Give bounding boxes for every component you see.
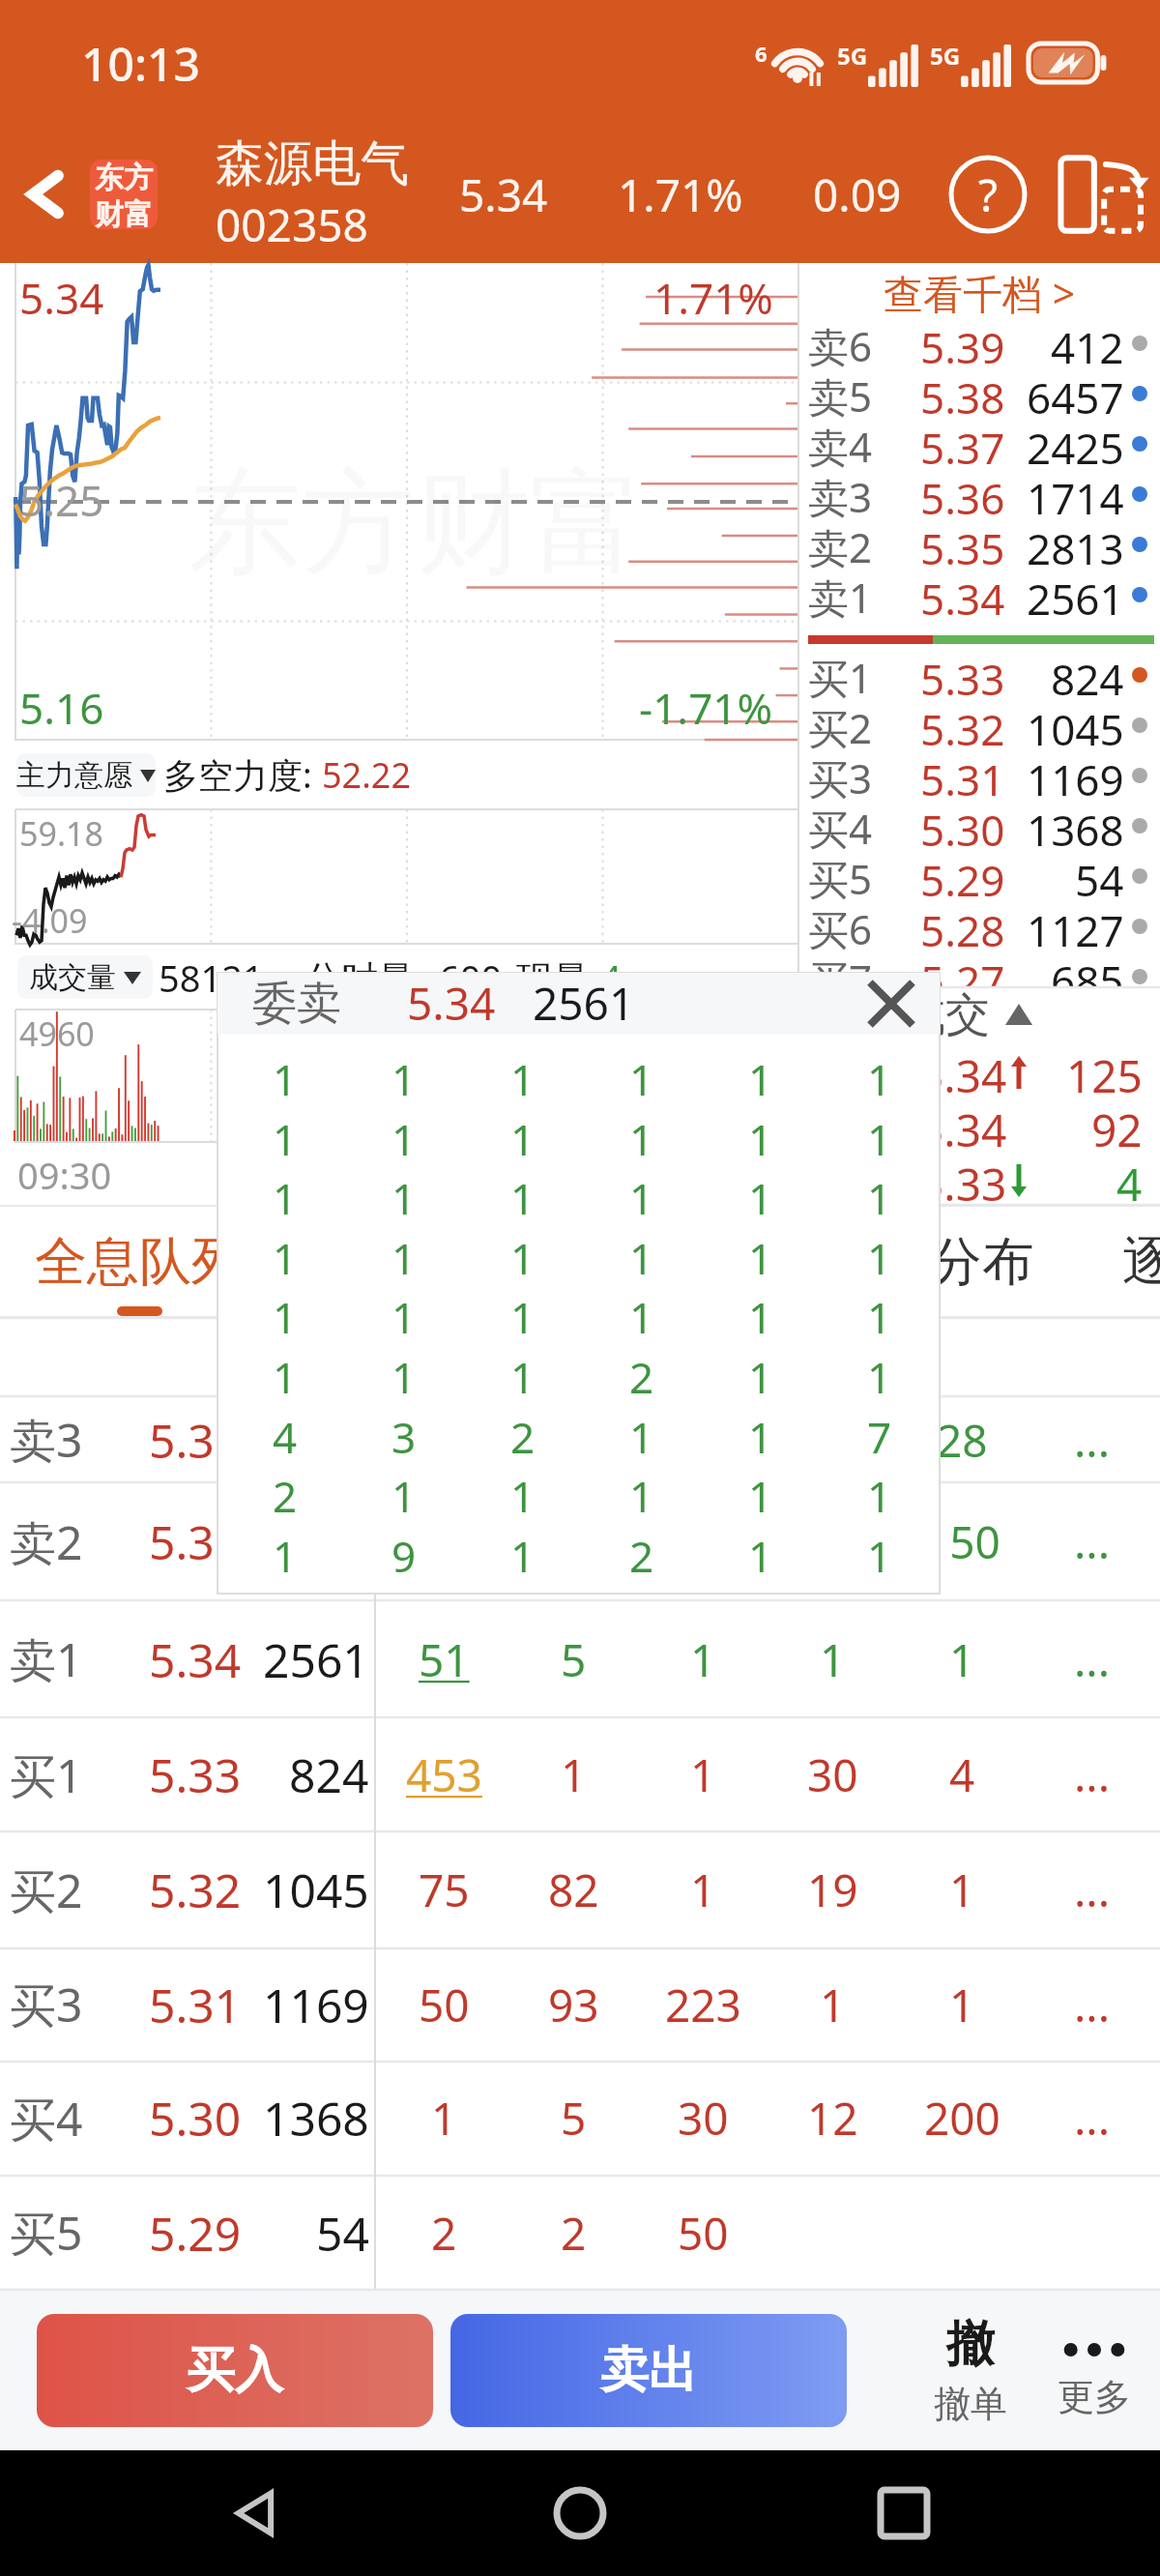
button[interactable]: Home xyxy=(512,2450,648,2576)
button[interactable]: 卖3 xyxy=(0,1397,1160,1482)
staticText: 1127 xyxy=(1027,901,1124,951)
staticText: 撤单 xyxy=(934,2381,1007,2427)
staticText: 09:30 xyxy=(17,1150,112,1200)
button[interactable]: 买4 xyxy=(0,2062,1160,2175)
button[interactable]: 卖1 xyxy=(0,1601,1160,1717)
button[interactable]: Help xyxy=(930,126,1046,263)
button[interactable]: 成交明细 xyxy=(560,1206,841,1318)
staticText: 1 xyxy=(510,1467,536,1525)
button[interactable]: 卖5 xyxy=(798,368,1160,419)
staticText: 30 xyxy=(678,2088,729,2149)
staticText: 现量: xyxy=(516,952,600,1003)
staticText: 1 xyxy=(510,1050,536,1108)
staticText: 4960 xyxy=(19,1011,95,1056)
staticText: 更多 xyxy=(1058,2374,1131,2420)
button[interactable]: 买1 xyxy=(798,650,1160,700)
staticText: 2561 xyxy=(533,973,635,1034)
staticText: 1 xyxy=(273,1288,298,1346)
staticText: 2561 xyxy=(263,1628,369,1691)
staticText: 2 xyxy=(629,1348,654,1406)
button[interactable]: 撤 xyxy=(909,2290,1032,2450)
staticText: 1 xyxy=(391,1050,417,1108)
button[interactable]: 买6 xyxy=(798,901,1160,951)
button[interactable]: 查看千档 > xyxy=(798,263,1160,323)
button[interactable]: Back xyxy=(0,126,90,263)
staticText: 东方财富 xyxy=(188,452,644,596)
staticText: 685 xyxy=(1051,951,1124,1002)
staticText: 9 xyxy=(391,1527,417,1585)
button[interactable]: 买4 xyxy=(798,801,1160,851)
staticText: 1 xyxy=(867,1169,892,1227)
staticText: 1 xyxy=(949,1629,975,1690)
button[interactable]: 卖6 xyxy=(798,318,1160,368)
button[interactable]: 买2 xyxy=(0,1832,1160,1947)
button[interactable]: Close xyxy=(843,973,940,1034)
staticText: 1 xyxy=(748,1408,773,1466)
staticText: 1 xyxy=(391,1110,417,1168)
button[interactable]: 卖3 xyxy=(798,469,1160,519)
button[interactable]: 卖2 xyxy=(798,519,1160,570)
staticText: 卖2 xyxy=(10,1510,83,1574)
button[interactable]: 逐笔 xyxy=(1122,1206,1160,1318)
staticText: 10:13 xyxy=(81,32,200,95)
staticText: 1714 xyxy=(263,1409,369,1472)
staticText: 1 xyxy=(273,1527,298,1585)
button[interactable]: 全息队列 xyxy=(0,1206,278,1318)
staticText: 1 xyxy=(510,1288,536,1346)
button[interactable]: 成交量 xyxy=(17,955,153,999)
staticText: 1368 xyxy=(263,2087,369,2150)
button[interactable]: 买5 xyxy=(0,2176,1160,2290)
staticText: 买1 xyxy=(808,650,873,700)
staticText: 2 xyxy=(629,1527,654,1585)
staticText: 5.36 xyxy=(920,469,1005,519)
staticText: 财富 xyxy=(95,196,153,229)
staticText: 买7 xyxy=(808,951,873,1002)
staticText: 5.28 xyxy=(920,901,1005,951)
button[interactable]: 买入 xyxy=(37,2314,433,2427)
staticText: 412 xyxy=(1051,318,1124,368)
staticText: 75 xyxy=(419,1859,470,1920)
button[interactable]: 买1 xyxy=(0,1718,1160,1831)
staticText: 30 xyxy=(807,1744,858,1805)
button[interactable]: 买2 xyxy=(798,700,1160,750)
staticText: 1 xyxy=(510,1110,536,1168)
button[interactable]: 更多 xyxy=(1032,2290,1156,2450)
button[interactable]: 卖1 xyxy=(798,570,1160,620)
button[interactable]: 买5 xyxy=(798,851,1160,901)
staticText: 50 xyxy=(678,2203,729,2264)
button[interactable]: Back xyxy=(188,2450,324,2576)
staticText: 1 xyxy=(867,1229,892,1287)
button[interactable]: 买3 xyxy=(0,1948,1160,2061)
staticText: 成交明细 xyxy=(596,1229,805,1295)
button[interactable]: 分布 xyxy=(841,1206,1122,1318)
staticText: 5.32 xyxy=(920,700,1005,750)
staticText: 买入 xyxy=(187,2340,283,2401)
button[interactable]: 实时成交 xyxy=(798,987,1160,1041)
button[interactable]: 委托队列 xyxy=(278,1206,560,1318)
staticText: 1 xyxy=(748,1467,773,1525)
staticText: 5.39 xyxy=(920,318,1005,368)
button[interactable]: Multi window xyxy=(1046,126,1152,263)
staticText: 2 xyxy=(561,2203,587,2264)
button[interactable]: 卖4 xyxy=(798,419,1160,469)
button[interactable]: 买7 xyxy=(798,951,1160,1002)
staticText: 4 xyxy=(949,1744,975,1805)
button[interactable]: 买3 xyxy=(798,750,1160,801)
staticText: 54 xyxy=(1075,851,1124,901)
button[interactable]: 主力意愿 xyxy=(16,753,156,797)
staticText: 5.37 xyxy=(920,419,1005,469)
staticText: ... xyxy=(1074,1744,1110,1805)
staticText: 51 xyxy=(419,1629,470,1690)
staticText: 1714 xyxy=(1027,469,1124,519)
staticText: 多空力度: xyxy=(163,751,322,799)
staticText: 卖1 xyxy=(10,1627,83,1691)
staticText: 5 xyxy=(561,1629,587,1690)
staticText: 1 xyxy=(273,1050,298,1108)
staticText: 125 xyxy=(1066,1045,1143,1099)
button[interactable]: 卖2 xyxy=(0,1483,1160,1600)
button[interactable]: Recents xyxy=(836,2450,971,2576)
staticText: ... xyxy=(1074,1629,1110,1690)
button[interactable]: 卖出 xyxy=(450,2314,847,2427)
staticText: 5.34 xyxy=(918,1045,1007,1099)
staticText: 1 xyxy=(690,1744,716,1805)
